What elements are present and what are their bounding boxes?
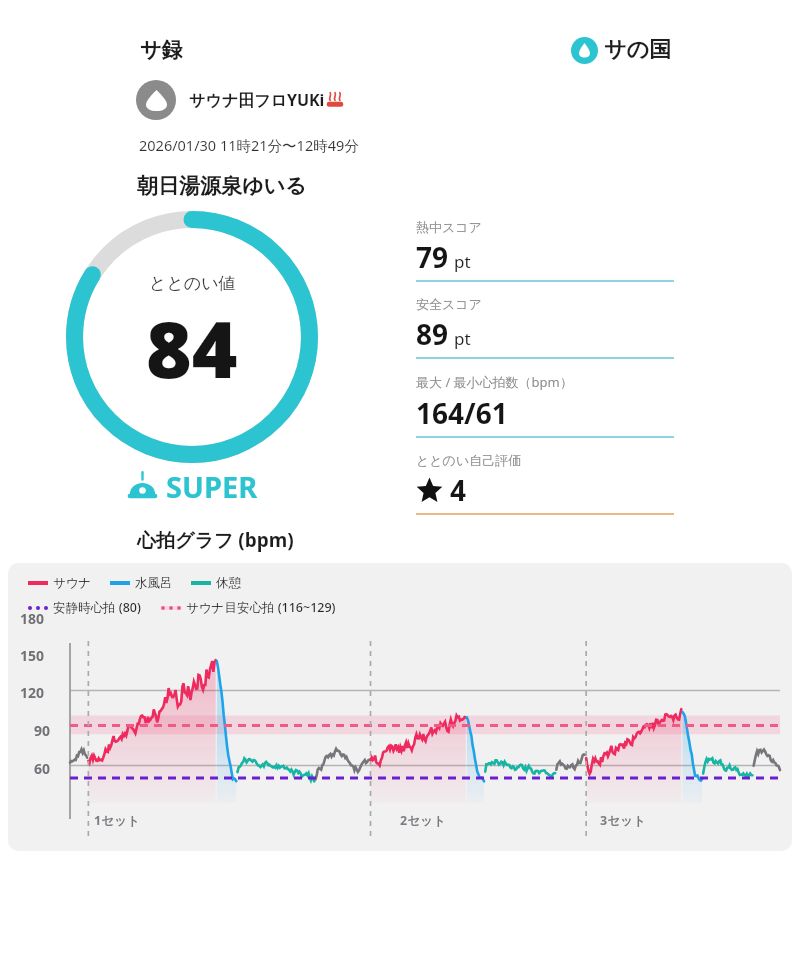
staticText: 180	[20, 609, 45, 628]
staticText: サウナ	[53, 575, 92, 591]
staticText: ととのい値	[149, 273, 236, 294]
staticText: 熱中スコア	[416, 219, 482, 235]
staticText: 休憩	[216, 575, 241, 591]
staticText: 安全スコア	[416, 296, 482, 312]
staticText: pt	[454, 250, 471, 273]
button[interactable]: 安全スコア	[416, 296, 674, 373]
button[interactable]: サウナ	[8, 563, 792, 851]
staticText: 2026/01/30 11時21分〜12時49分	[139, 135, 359, 155]
staticText: 2セット	[400, 812, 446, 829]
staticText: 120	[20, 683, 45, 702]
staticText: 安静時心拍 (80)	[53, 599, 141, 616]
staticText: 89	[416, 315, 449, 353]
staticText: pt	[454, 327, 471, 350]
staticText: 4	[450, 471, 467, 509]
staticText: 朝日湯源泉ゆいる	[137, 173, 307, 199]
staticText: 150	[20, 646, 45, 665]
staticText: ととのい自己評価	[416, 452, 522, 468]
staticText: SUPER	[166, 467, 258, 506]
staticText: サウナ目安心拍 (116~129)	[186, 599, 336, 616]
staticText: 90	[34, 721, 51, 740]
button[interactable]: 熱中スコア	[416, 219, 674, 296]
staticText: 84	[146, 295, 238, 401]
staticText: 1セット	[94, 812, 140, 829]
staticText: 最大 / 最小心拍数（bpm）	[416, 373, 573, 391]
staticText: 3セット	[600, 812, 646, 829]
staticText: 心拍グラフ (bpm)	[137, 527, 294, 553]
button[interactable]: 最大 / 最小心拍数（bpm）	[416, 373, 674, 452]
staticText: 水風呂	[135, 575, 173, 591]
staticText: 60	[34, 759, 51, 778]
staticText: サの国	[604, 36, 672, 64]
staticText: サウナ田フロYUKi	[189, 89, 325, 111]
staticText: 79	[416, 238, 449, 276]
button[interactable]: ととのい自己評価	[416, 452, 674, 515]
button[interactable]: サウナ田フロYUKi	[136, 80, 344, 120]
staticText: 164/61	[416, 394, 508, 432]
button[interactable]: サの国 home	[571, 36, 672, 64]
staticText: サ録	[140, 37, 183, 63]
